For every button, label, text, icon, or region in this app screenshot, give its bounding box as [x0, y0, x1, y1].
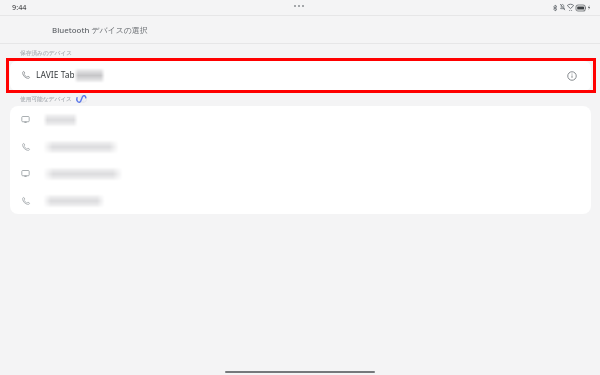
button[interactable]: [10, 187, 591, 214]
button[interactable]: Device details: [562, 66, 582, 86]
staticText: 使用可能なデバイス: [20, 96, 72, 103]
staticText: 保存済みのデバイス: [20, 50, 72, 57]
button[interactable]: [10, 133, 591, 160]
button[interactable]: LAVIE Tab: [10, 61, 591, 91]
button[interactable]: [10, 106, 591, 133]
staticText: LAVIE Tab: [36, 69, 75, 80]
button[interactable]: [10, 160, 591, 187]
staticText: Bluetooth デバイスの選択: [52, 25, 148, 36]
staticText: 9:44: [12, 2, 27, 12]
